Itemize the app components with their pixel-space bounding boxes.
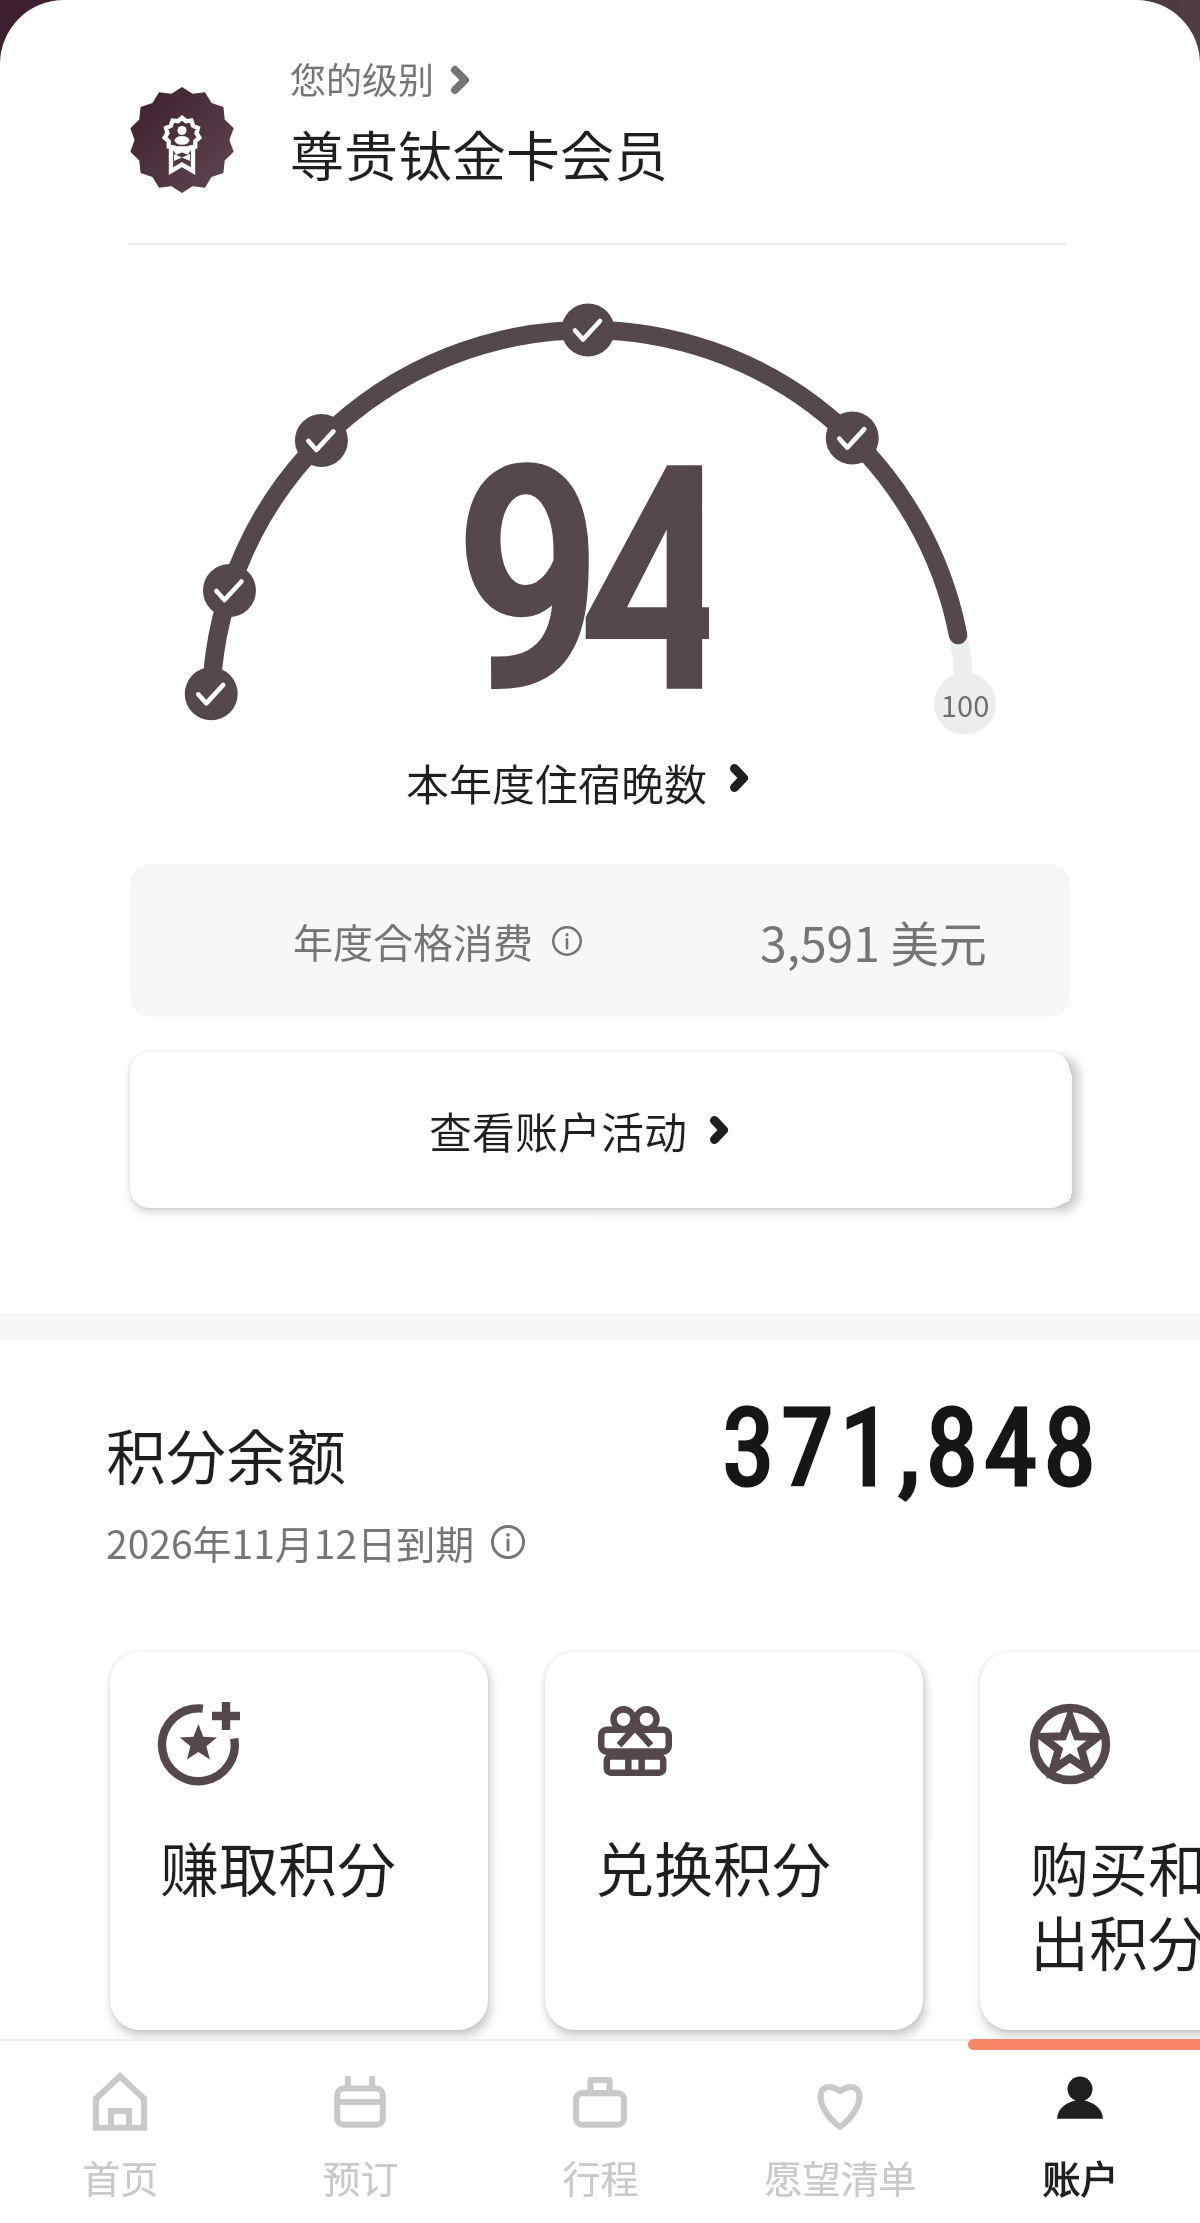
staticText: 预订 [322, 2149, 399, 2204]
staticText: 购买和转 出积分 [1030, 1824, 1200, 1983]
button[interactable]: 账户 [960, 2051, 1200, 2223]
staticText: 本年度住宿晚数 [406, 751, 707, 805]
staticText: 积分余额 [106, 1410, 346, 1497]
staticText: 100 [941, 683, 990, 725]
button[interactable]: 购买和转 出积分 [980, 1652, 1200, 2030]
button[interactable]: 行程 [480, 2051, 720, 2223]
staticText: 年度合格消费 [293, 912, 533, 970]
staticText: 兑换积分 [595, 1824, 832, 1909]
button[interactable]: 兑换积分 [545, 1652, 923, 2030]
staticText: 3,591 美元 [760, 906, 987, 976]
staticText: 2026年11月12日到期 [106, 1514, 475, 1570]
staticText: 查看账户活动 [429, 1099, 687, 1161]
button[interactable]: 愿望清单 [720, 2051, 960, 2223]
staticText: 赚取积分 [160, 1824, 397, 1909]
staticText: 您的级别 [290, 52, 435, 104]
button[interactable]: 赚取积分 [110, 1652, 488, 2030]
button[interactable]: 年度合格消费 [129, 864, 1071, 1017]
staticText: 行程 [562, 2149, 639, 2204]
staticText: 94 [455, 405, 709, 725]
button[interactable]: 查看账户活动 [130, 1052, 1070, 1208]
button[interactable]: 2026年11月12日到期 [100, 1510, 531, 1574]
staticText: 371,848 [722, 1386, 1102, 1511]
button[interactable]: 预订 [240, 2051, 480, 2223]
staticText: 账户 [1042, 2149, 1119, 2204]
staticText: 愿望清单 [764, 2149, 917, 2204]
button[interactable]: 您的级别 [0, 0, 1200, 244]
staticText: 尊贵钛金卡会员 [290, 114, 668, 192]
button[interactable]: 首页 [0, 2051, 240, 2223]
staticText: 首页 [82, 2149, 159, 2204]
button[interactable]: 本年度住宿晚数 [406, 743, 748, 813]
